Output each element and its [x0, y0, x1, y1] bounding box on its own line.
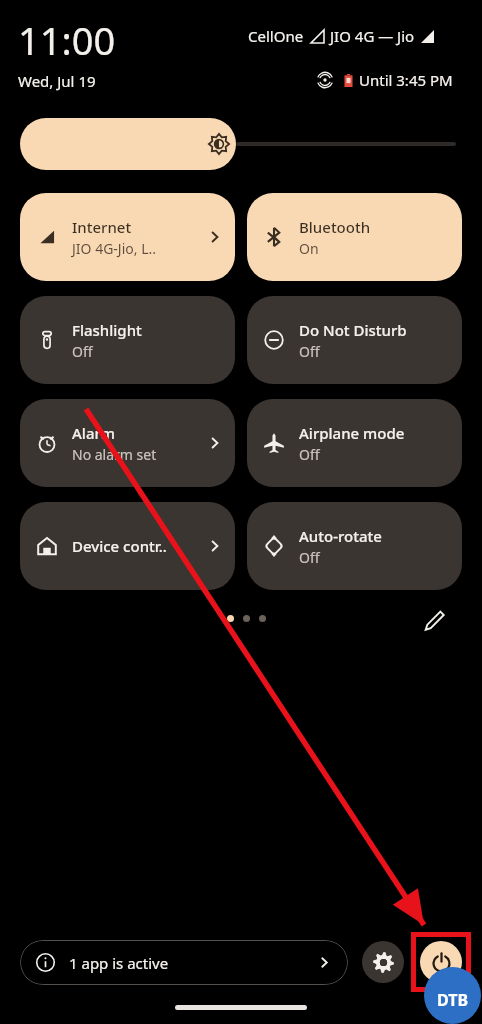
staticText: Bluetooth: [299, 217, 371, 237]
staticText: Off: [72, 342, 93, 361]
staticText: Auto-rotate: [299, 526, 382, 546]
button[interactable]: Device contr..: [20, 502, 235, 590]
staticText: CellOne: [248, 26, 304, 46]
staticText: Wed, Jul 19: [18, 71, 96, 91]
staticText: Flashlight: [72, 320, 142, 340]
button[interactable]: Internet: [20, 193, 235, 281]
staticText: JIO 4G — Jio: [330, 26, 415, 46]
staticText: Off: [299, 342, 320, 361]
button[interactable]: Power: [420, 941, 462, 983]
button[interactable]: Airplane mode: [247, 399, 462, 487]
staticText: Until 3:45 PM: [359, 70, 453, 90]
button[interactable]: Settings: [362, 941, 404, 983]
staticText: 1 app is active: [69, 953, 169, 973]
staticText: Do Not Disturb: [299, 320, 407, 340]
staticText: DTB: [437, 989, 469, 1011]
button[interactable]: Edit tiles: [418, 604, 450, 636]
staticText: Airplane mode: [299, 423, 405, 443]
button[interactable]: Bluetooth: [247, 193, 462, 281]
staticText: 11:00: [18, 14, 116, 66]
staticText: JIO 4G-Jio, L..: [72, 239, 156, 258]
staticText: Internet: [72, 217, 132, 237]
staticText: Off: [299, 445, 320, 464]
button[interactable]: Auto-rotate: [247, 502, 462, 590]
button[interactable]: Flashlight: [20, 296, 235, 384]
button[interactable]: Brightness: [20, 118, 462, 170]
staticText: No alarm set: [72, 445, 157, 464]
button[interactable]: 1 app is active: [20, 940, 348, 985]
staticText: Off: [299, 548, 320, 567]
staticText: On: [299, 239, 319, 258]
staticText: Device contr..: [72, 536, 167, 556]
staticText: Alarm: [72, 423, 116, 443]
button[interactable]: Alarm: [20, 399, 235, 487]
button[interactable]: Do Not Disturb: [247, 296, 462, 384]
